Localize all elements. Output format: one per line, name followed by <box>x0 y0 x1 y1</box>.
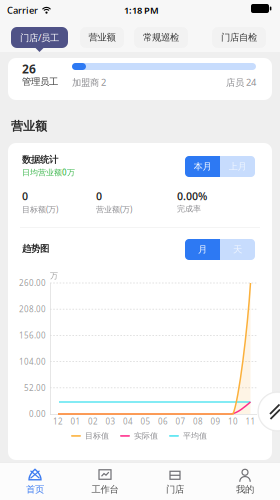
button[interactable]: 门店自检 <box>212 27 266 48</box>
staticText: 常规巡检 <box>143 32 179 43</box>
staticText: 1:18 PM <box>124 4 159 16</box>
staticText: 260.00 <box>19 278 46 288</box>
staticText: 07 <box>175 416 185 427</box>
staticText: 天 <box>233 244 242 255</box>
staticText: 0.00 <box>29 409 46 419</box>
staticText: 完成率 <box>177 204 201 214</box>
button[interactable]: 我的 <box>210 462 280 500</box>
staticText: 管理员工 <box>22 76 58 87</box>
staticText: 加盟商 2 <box>72 76 106 88</box>
staticText: 平均值 <box>183 431 207 441</box>
button[interactable]: 门店/员工 <box>11 27 68 52</box>
staticText: 26 <box>22 61 36 77</box>
staticText: 店员 24 <box>226 76 256 88</box>
staticText: 104.00 <box>19 356 46 367</box>
staticText: 0 <box>96 189 102 203</box>
staticText: Carrier <box>7 4 38 16</box>
staticText: 目标值 <box>85 431 109 441</box>
staticText: 目标额(万) <box>22 204 58 215</box>
staticText: 208.00 <box>19 304 46 314</box>
staticText: 首页 <box>26 484 44 495</box>
staticText: 万 <box>50 271 58 281</box>
button[interactable]: 月 <box>185 239 220 260</box>
staticText: 11 <box>245 416 255 427</box>
staticText: 日均营业额0万 <box>22 167 75 178</box>
staticText: 营业额(万) <box>96 204 132 215</box>
staticText: 0.00% <box>177 189 207 203</box>
staticText: 门店/员工 <box>20 31 59 44</box>
staticText: 0 <box>22 189 28 203</box>
button[interactable]: 工作台 <box>70 462 140 500</box>
staticText: 趋势图 <box>22 243 49 254</box>
button[interactable]: 天 <box>220 239 255 260</box>
staticText: 月 <box>198 244 207 255</box>
staticText: 营业额 <box>88 32 115 43</box>
button[interactable]: 首页 <box>0 462 70 500</box>
staticText: 02 <box>88 416 98 427</box>
staticText: 156.00 <box>19 330 46 341</box>
staticText: 08 <box>193 416 203 427</box>
staticText: 本月 <box>193 161 211 172</box>
staticText: 12 <box>53 416 63 427</box>
button[interactable]: 常规巡检 <box>134 27 188 48</box>
staticText: 营业额 <box>11 119 47 134</box>
staticText: 01 <box>70 416 80 427</box>
staticText: 我的 <box>236 484 254 495</box>
button[interactable]: Expand chart <box>259 393 280 430</box>
staticText: 工作台 <box>91 484 118 495</box>
button[interactable]: 营业额 <box>80 27 124 48</box>
button[interactable]: 本月 <box>185 156 220 177</box>
button[interactable]: 门店 <box>140 462 210 500</box>
staticText: 52.00 <box>24 382 46 393</box>
staticText: 05 <box>140 416 150 427</box>
button[interactable]: 上月 <box>220 156 255 177</box>
staticText: 09 <box>210 416 220 427</box>
staticText: 03 <box>105 416 115 427</box>
staticText: 10 <box>228 416 238 427</box>
staticText: 04 <box>123 416 133 427</box>
staticText: 门店自检 <box>221 32 257 43</box>
staticText: 门店 <box>166 484 184 495</box>
staticText: 数据统计 <box>22 154 58 165</box>
staticText: 实际值 <box>134 431 158 441</box>
staticText: 06 <box>158 416 168 427</box>
staticText: 上月 <box>228 161 246 172</box>
